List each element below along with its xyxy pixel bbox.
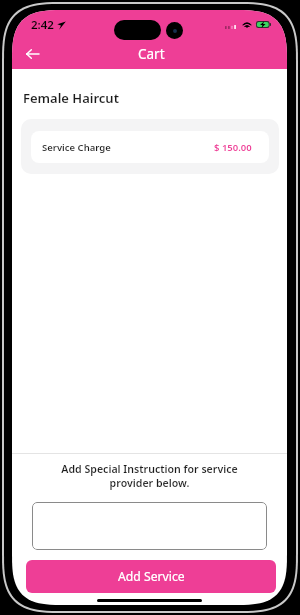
staticText: Service Charge (42, 141, 111, 154)
staticText: Cart (138, 45, 165, 63)
button[interactable]: Back (19, 40, 46, 67)
staticText: Add Service (118, 568, 185, 585)
staticText: $ 150.00 (214, 141, 252, 154)
button[interactable] (32, 502, 267, 550)
staticText: Female Haircut (23, 89, 119, 107)
staticText: Add Special Instruction for service prov… (12, 462, 287, 490)
button[interactable]: Service Charge (31, 131, 269, 163)
staticText: 2:42 (31, 17, 54, 33)
button[interactable]: Add Service (26, 560, 276, 593)
